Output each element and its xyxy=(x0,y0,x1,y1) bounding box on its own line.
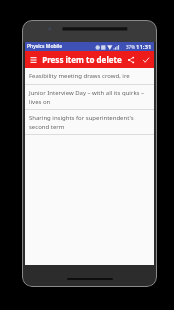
button[interactable]: Feasibility meeting draws crowd, ire xyxy=(25,68,154,85)
staticText: Press item to delete xyxy=(41,54,123,65)
staticText: Sharing insights for superintendent's se… xyxy=(29,114,150,130)
button[interactable]: Junior Interview Day – with all its quir… xyxy=(25,85,154,110)
button[interactable]: Confirm xyxy=(138,51,153,68)
staticText: Junior Interview Day – with all its quir… xyxy=(29,89,150,105)
button[interactable]: Open navigation drawer xyxy=(25,51,41,68)
button[interactable]: Share xyxy=(123,51,138,68)
staticText: Physics Mobile xyxy=(27,43,63,50)
staticText: 37% xyxy=(126,44,135,50)
button[interactable]: Sharing insights for superintendent's se… xyxy=(25,110,154,135)
staticText: 11:31 xyxy=(136,43,152,51)
staticText: Feasibility meeting draws crowd, ire xyxy=(29,72,150,80)
